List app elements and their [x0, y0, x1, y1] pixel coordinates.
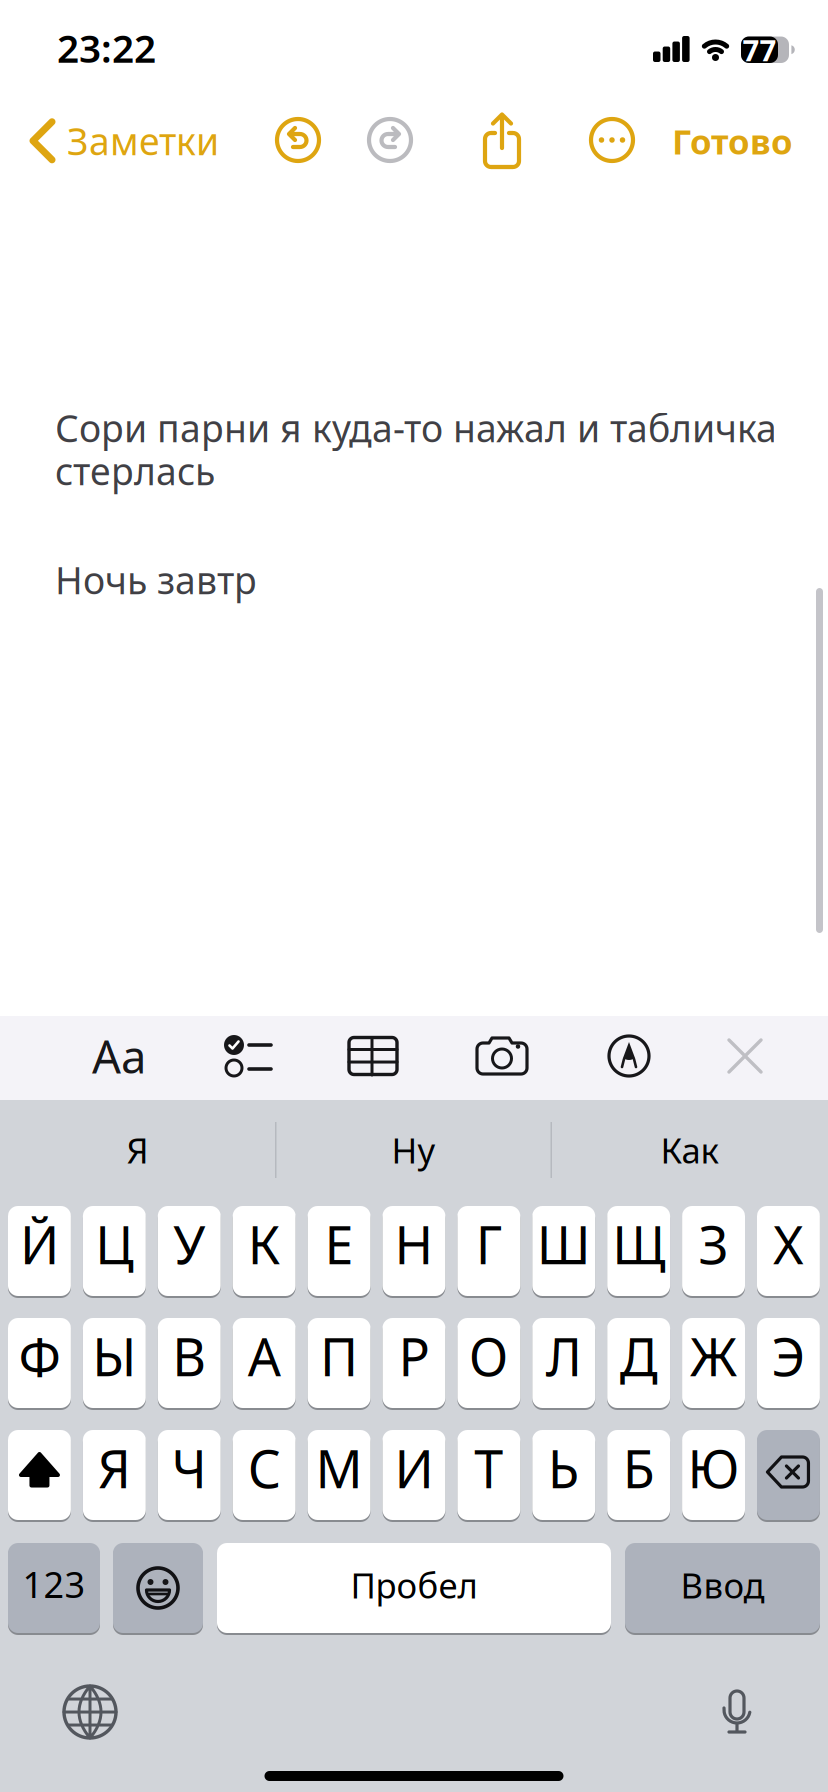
button[interactable]: Й [8, 1206, 71, 1296]
staticText: О [469, 1321, 509, 1391]
staticText: Д [620, 1321, 658, 1391]
button[interactable]: Диктовка [717, 1688, 757, 1736]
staticText: З [698, 1209, 728, 1279]
staticText: И [394, 1433, 433, 1503]
staticText: Й [20, 1209, 59, 1279]
button[interactable]: Т [457, 1430, 520, 1520]
button[interactable]: Ещё [589, 117, 635, 163]
staticText: Э [771, 1321, 805, 1391]
staticText: Я [98, 1433, 131, 1503]
staticText: Ввод [680, 1562, 764, 1608]
button[interactable]: Я [83, 1430, 146, 1520]
button[interactable]: Список [205, 1020, 285, 1092]
staticText: А [248, 1321, 281, 1391]
button[interactable]: Х [757, 1206, 820, 1296]
staticText: Р [398, 1321, 429, 1391]
button[interactable]: Ь [532, 1430, 595, 1520]
button[interactable]: А [233, 1318, 296, 1408]
button[interactable]: Повторить [367, 117, 413, 163]
staticText: М [316, 1433, 363, 1503]
staticText: Б [623, 1433, 655, 1503]
staticText: Aa [92, 1026, 146, 1086]
button[interactable]: С [233, 1430, 296, 1520]
staticText: Т [474, 1433, 503, 1503]
button[interactable]: Ы [83, 1318, 146, 1408]
staticText: К [248, 1209, 281, 1279]
button[interactable]: Ввод [625, 1543, 820, 1633]
button[interactable]: Л [532, 1318, 595, 1408]
staticText: Ну [391, 1127, 435, 1173]
staticText: Ш [537, 1209, 591, 1279]
button[interactable]: Э [757, 1318, 820, 1408]
button[interactable]: Назад: Заметки [28, 116, 219, 166]
button[interactable]: Г [457, 1206, 520, 1296]
staticText: С [248, 1433, 281, 1503]
button[interactable]: Я [0, 1106, 275, 1194]
staticText: Я [126, 1127, 148, 1173]
button[interactable]: Закрыть [710, 1020, 780, 1092]
button[interactable]: Д [607, 1318, 670, 1408]
staticText: Заметки [67, 116, 219, 166]
staticText: Ы [92, 1321, 136, 1391]
staticText: Готово [672, 118, 793, 164]
staticText: Х [773, 1209, 804, 1279]
staticText: Ф [18, 1321, 60, 1391]
staticText: Ю [687, 1433, 739, 1503]
button[interactable]: Р [382, 1318, 445, 1408]
button[interactable]: Е [308, 1206, 370, 1296]
button[interactable]: Поделиться [481, 110, 523, 168]
staticText: Ь [548, 1433, 580, 1503]
button[interactable]: П [308, 1318, 370, 1408]
button[interactable]: И [382, 1430, 445, 1520]
button[interactable]: Ч [158, 1430, 221, 1520]
button[interactable]: Б [607, 1430, 670, 1520]
staticText: У [173, 1209, 205, 1279]
button[interactable]: М [308, 1430, 370, 1520]
staticText: Ц [95, 1209, 133, 1279]
staticText: 23:22 [57, 22, 156, 73]
button[interactable]: Разметка [589, 1020, 669, 1092]
button[interactable]: Формат [79, 1020, 159, 1092]
button[interactable]: Таблица [333, 1020, 413, 1092]
button[interactable]: Ю [682, 1430, 745, 1520]
staticText: Г [476, 1209, 502, 1279]
staticText: 77 [742, 30, 776, 69]
button[interactable]: Ц [83, 1206, 146, 1296]
staticText: Пробел [350, 1562, 477, 1608]
button[interactable]: К [233, 1206, 296, 1296]
button[interactable]: Готово [672, 118, 793, 164]
staticText: Ч [172, 1433, 207, 1503]
button[interactable]: Камера [462, 1020, 542, 1092]
button[interactable]: Н [382, 1206, 445, 1296]
button[interactable]: 123 [8, 1543, 100, 1633]
staticText: Л [546, 1321, 582, 1391]
staticText: Е [325, 1209, 354, 1279]
button[interactable]: Ф [8, 1318, 71, 1408]
button[interactable]: Ш [532, 1206, 595, 1296]
button[interactable]: О [457, 1318, 520, 1408]
staticText: стерлась [55, 446, 215, 496]
button[interactable]: Shift [8, 1430, 71, 1520]
staticText: Сори парни я куда-то нажал и табличка [55, 403, 777, 453]
button[interactable]: Пробел [217, 1543, 611, 1633]
button[interactable]: Ну [276, 1106, 550, 1194]
staticText: Щ [612, 1209, 665, 1279]
button[interactable]: Эмодзи [113, 1543, 203, 1633]
staticText: Ж [690, 1321, 737, 1391]
staticText: Ночь завтр [55, 555, 257, 605]
staticText: Как [660, 1127, 718, 1173]
button[interactable]: Как [552, 1106, 827, 1194]
button[interactable]: У [158, 1206, 221, 1296]
staticText: П [320, 1321, 358, 1391]
staticText: Н [394, 1209, 433, 1279]
button[interactable]: В [158, 1318, 221, 1408]
staticText: В [172, 1321, 206, 1391]
button[interactable]: Отменить [275, 117, 321, 163]
button[interactable]: Сменить клавиатуру [62, 1684, 118, 1740]
button[interactable]: Щ [607, 1206, 670, 1296]
button[interactable]: Удалить [757, 1430, 820, 1520]
staticText: 123 [22, 1560, 85, 1608]
button[interactable]: З [682, 1206, 745, 1296]
button[interactable]: Ж [682, 1318, 745, 1408]
